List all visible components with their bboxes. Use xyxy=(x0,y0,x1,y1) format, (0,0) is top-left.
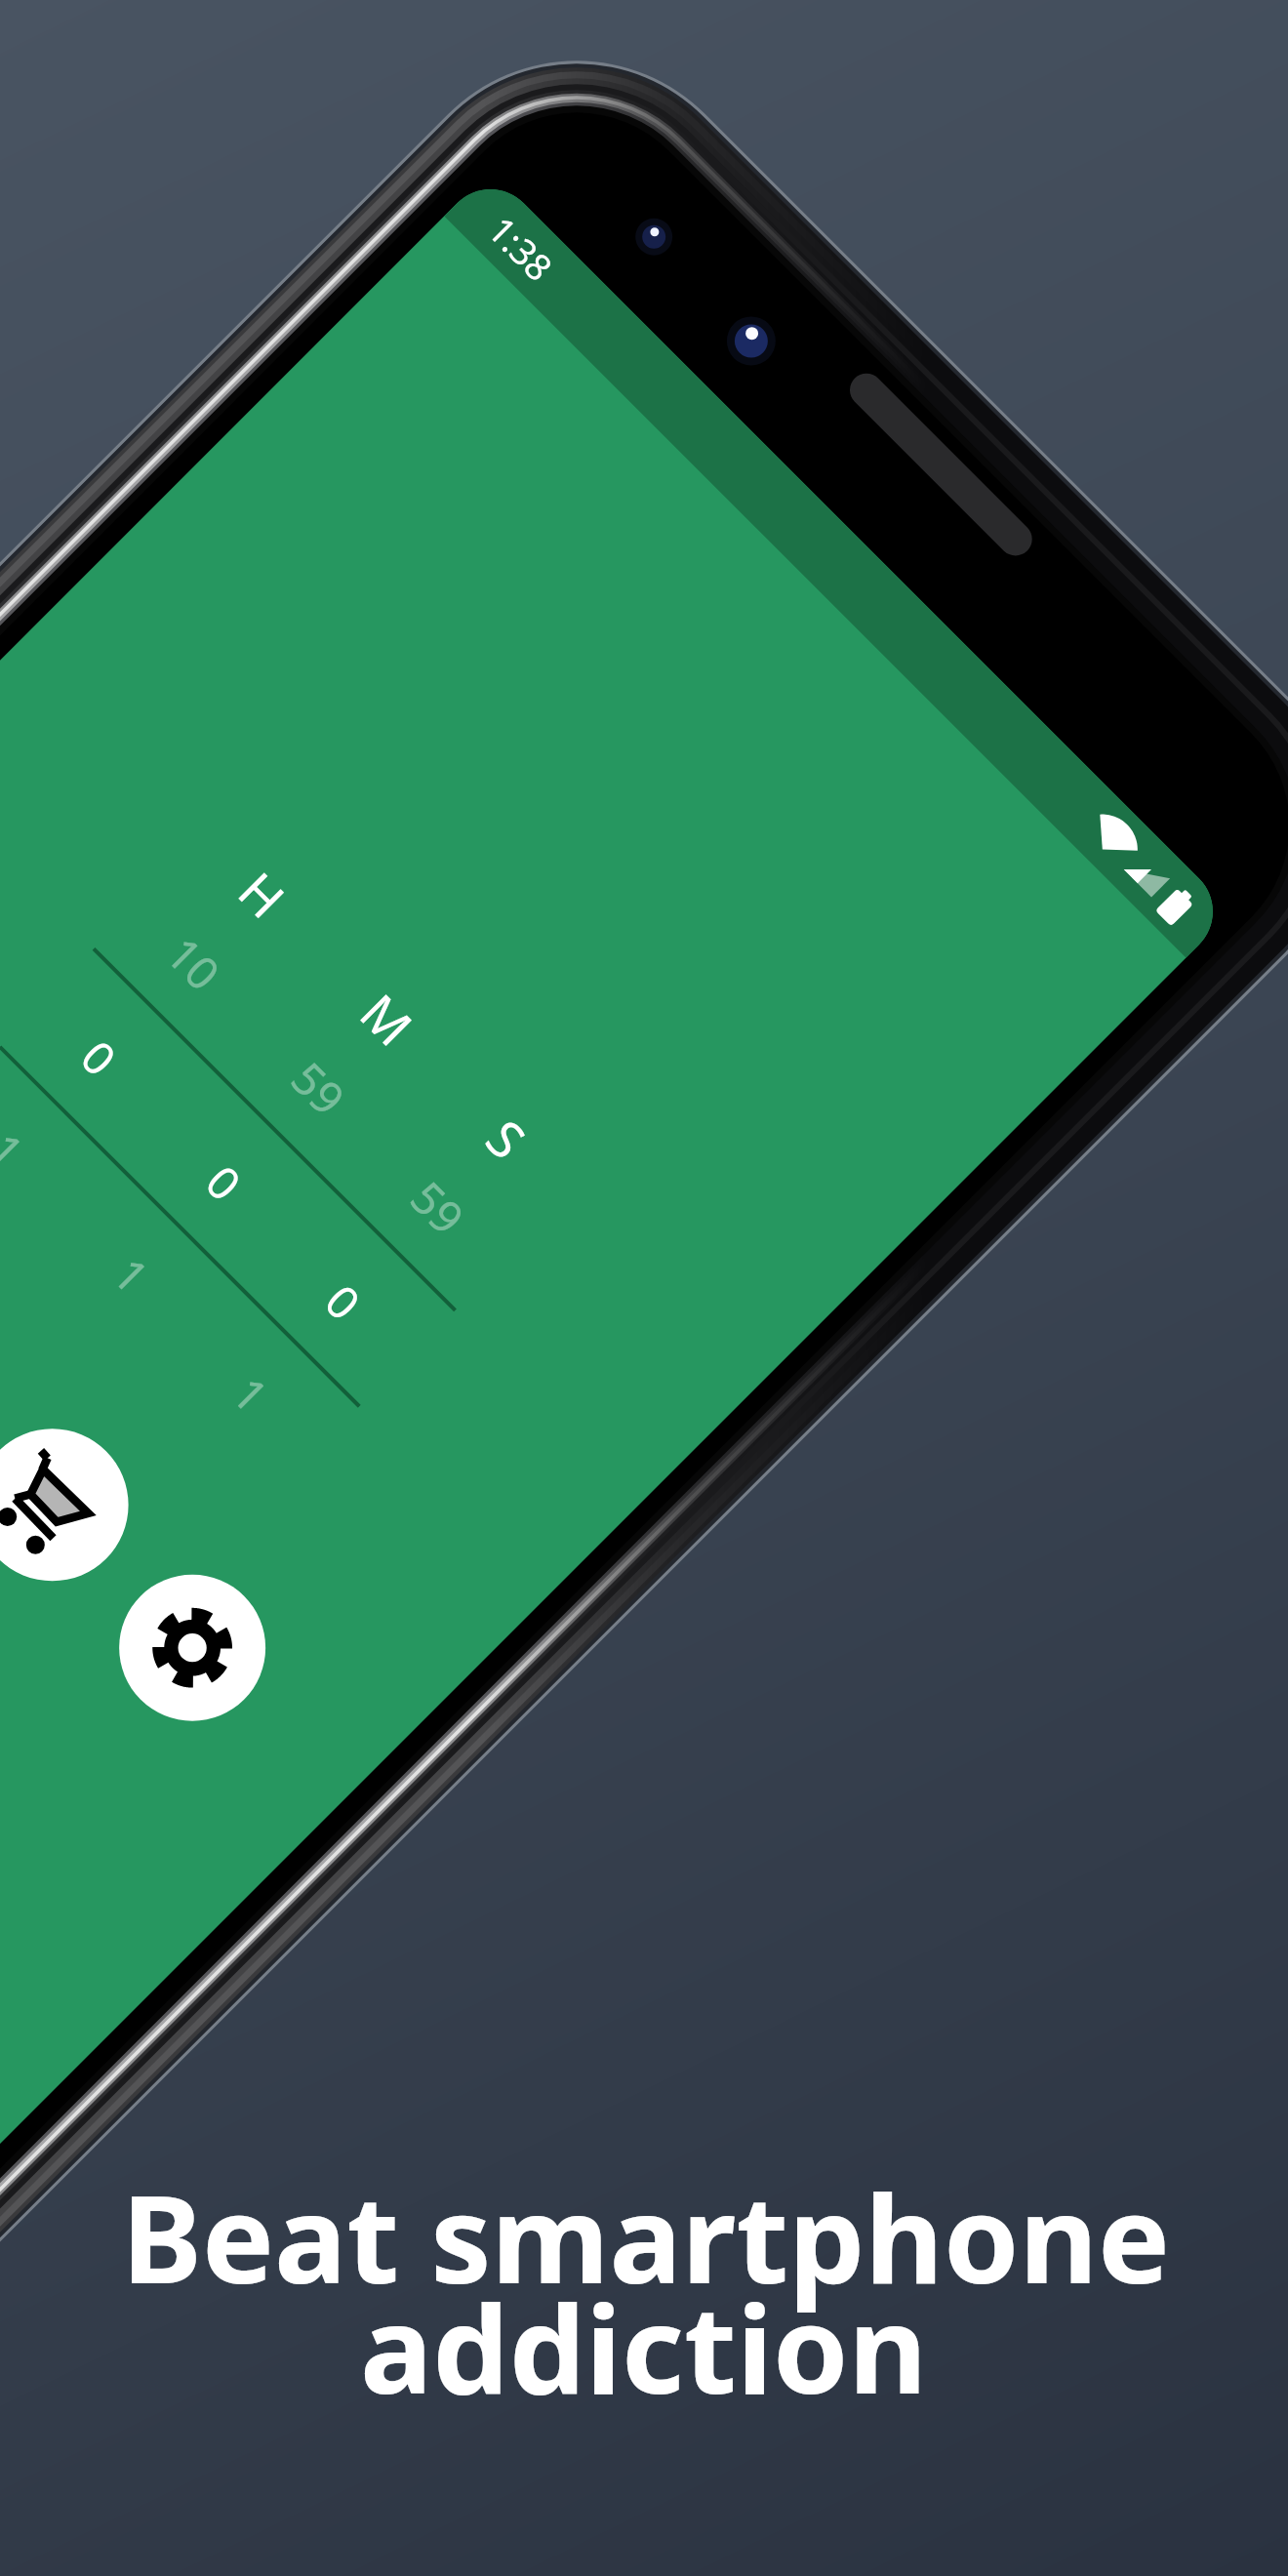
button[interactable]: Buy premium xyxy=(0,1429,129,1581)
button[interactable]: Hours xyxy=(41,999,158,1116)
button[interactable]: Minutes xyxy=(166,1124,283,1241)
button[interactable]: Seconds xyxy=(285,1243,402,1360)
button[interactable]: Settings xyxy=(119,1575,265,1721)
